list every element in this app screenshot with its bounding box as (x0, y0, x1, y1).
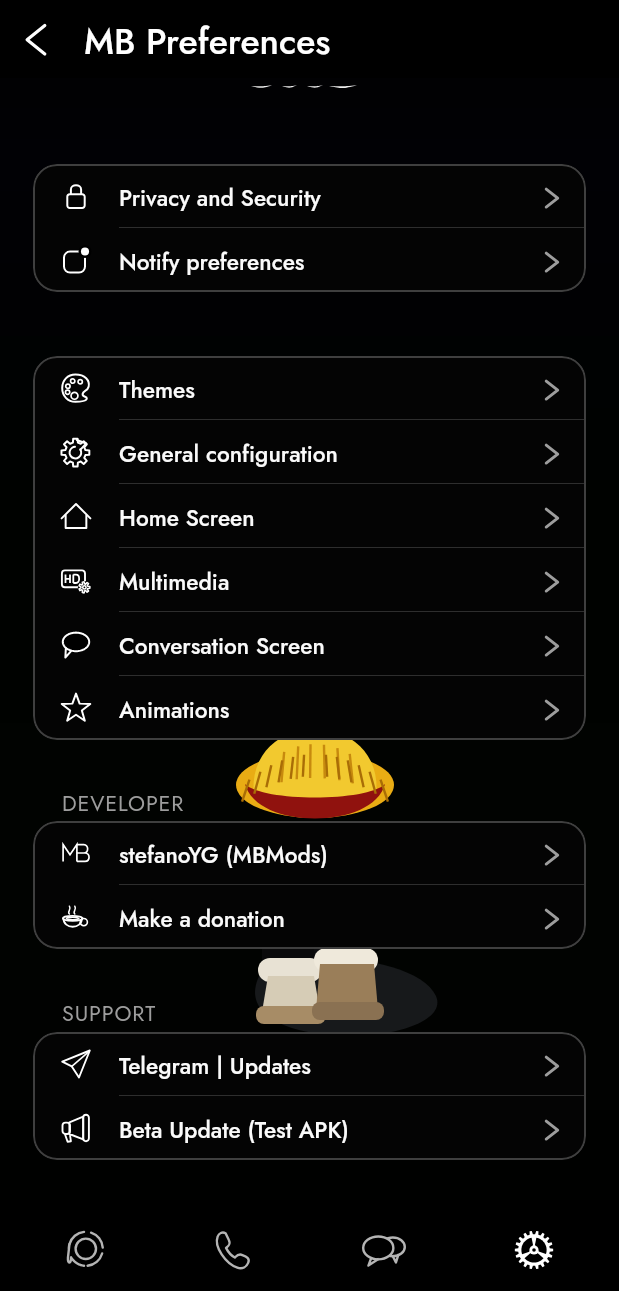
staticText: Conversation Screen (119, 630, 325, 663)
button[interactable]: Telegram | Updates (33, 1032, 586, 1096)
staticText: Make a donation (119, 903, 285, 936)
staticText: Privacy and Security (119, 182, 321, 215)
button[interactable]: Animations (33, 676, 586, 740)
button[interactable]: Back (0, 0, 75, 78)
button[interactable]: Multimedia (33, 548, 586, 612)
button[interactable]: Status (10, 1211, 159, 1288)
staticText: SUPPORT (62, 998, 157, 1029)
staticText: Themes (119, 374, 195, 407)
button[interactable]: General configuration (33, 420, 586, 484)
button[interactable]: Notify preferences (33, 228, 586, 292)
button[interactable]: Calls (159, 1211, 309, 1288)
button[interactable]: stefanoYG (MBMods) (33, 821, 586, 885)
staticText: Beta Update (Test APK) (119, 1114, 349, 1147)
button[interactable]: Home Screen (33, 484, 586, 548)
button[interactable]: Chats (309, 1211, 459, 1288)
button[interactable]: Settings (459, 1211, 609, 1288)
button[interactable]: Beta Update (Test APK) (33, 1096, 586, 1160)
staticText: General configuration (119, 438, 338, 471)
staticText: Telegram | Updates (119, 1050, 311, 1083)
button[interactable]: Privacy and Security (33, 164, 586, 228)
staticText: DEVELOPER (62, 788, 185, 819)
staticText: Notify preferences (119, 246, 305, 279)
staticText: Home Screen (119, 502, 255, 535)
button[interactable]: Conversation Screen (33, 612, 586, 676)
staticText: Multimedia (119, 566, 230, 599)
button[interactable]: Make a donation (33, 885, 586, 949)
staticText: Animations (119, 694, 230, 727)
staticText: stefanoYG (MBMods) (119, 839, 328, 872)
staticText: MB Preferences (84, 16, 331, 67)
button[interactable]: Themes (33, 356, 586, 420)
